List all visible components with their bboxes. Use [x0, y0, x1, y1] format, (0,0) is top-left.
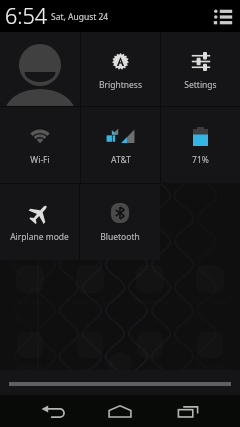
- staticText: Sat, August 24: [51, 11, 109, 23]
- button[interactable]: AT&T: [81, 107, 160, 183]
- button[interactable]: Recent apps: [176, 400, 200, 422]
- button[interactable]: User: [0, 32, 80, 106]
- button[interactable]: Wi-Fi: [0, 107, 80, 183]
- staticText: Messages: [133, 296, 168, 306]
- staticText: 71%: [192, 154, 209, 166]
- button[interactable]: Home: [107, 400, 133, 422]
- staticText: Clock: [81, 361, 100, 371]
- button[interactable]: Notifications: [213, 8, 233, 25]
- button[interactable]: Airplane mode: [0, 184, 79, 260]
- button[interactable]: Bluetooth: [80, 184, 160, 260]
- staticText: 6:54: [5, 1, 48, 30]
- staticText: Bluetooth: [100, 231, 140, 243]
- staticText: Brightness: [99, 79, 142, 91]
- button[interactable]: 71%: [161, 107, 240, 183]
- button[interactable]: Back: [41, 400, 65, 422]
- staticText: AT&T: [111, 154, 131, 166]
- staticText: Airplane mode: [10, 231, 69, 243]
- staticText: Wi-Fi: [30, 154, 50, 166]
- button[interactable]: Brightness: [81, 32, 160, 106]
- staticText: Photos: [138, 361, 163, 371]
- button[interactable]: Settings: [161, 32, 240, 106]
- staticText: Settings: [184, 79, 217, 91]
